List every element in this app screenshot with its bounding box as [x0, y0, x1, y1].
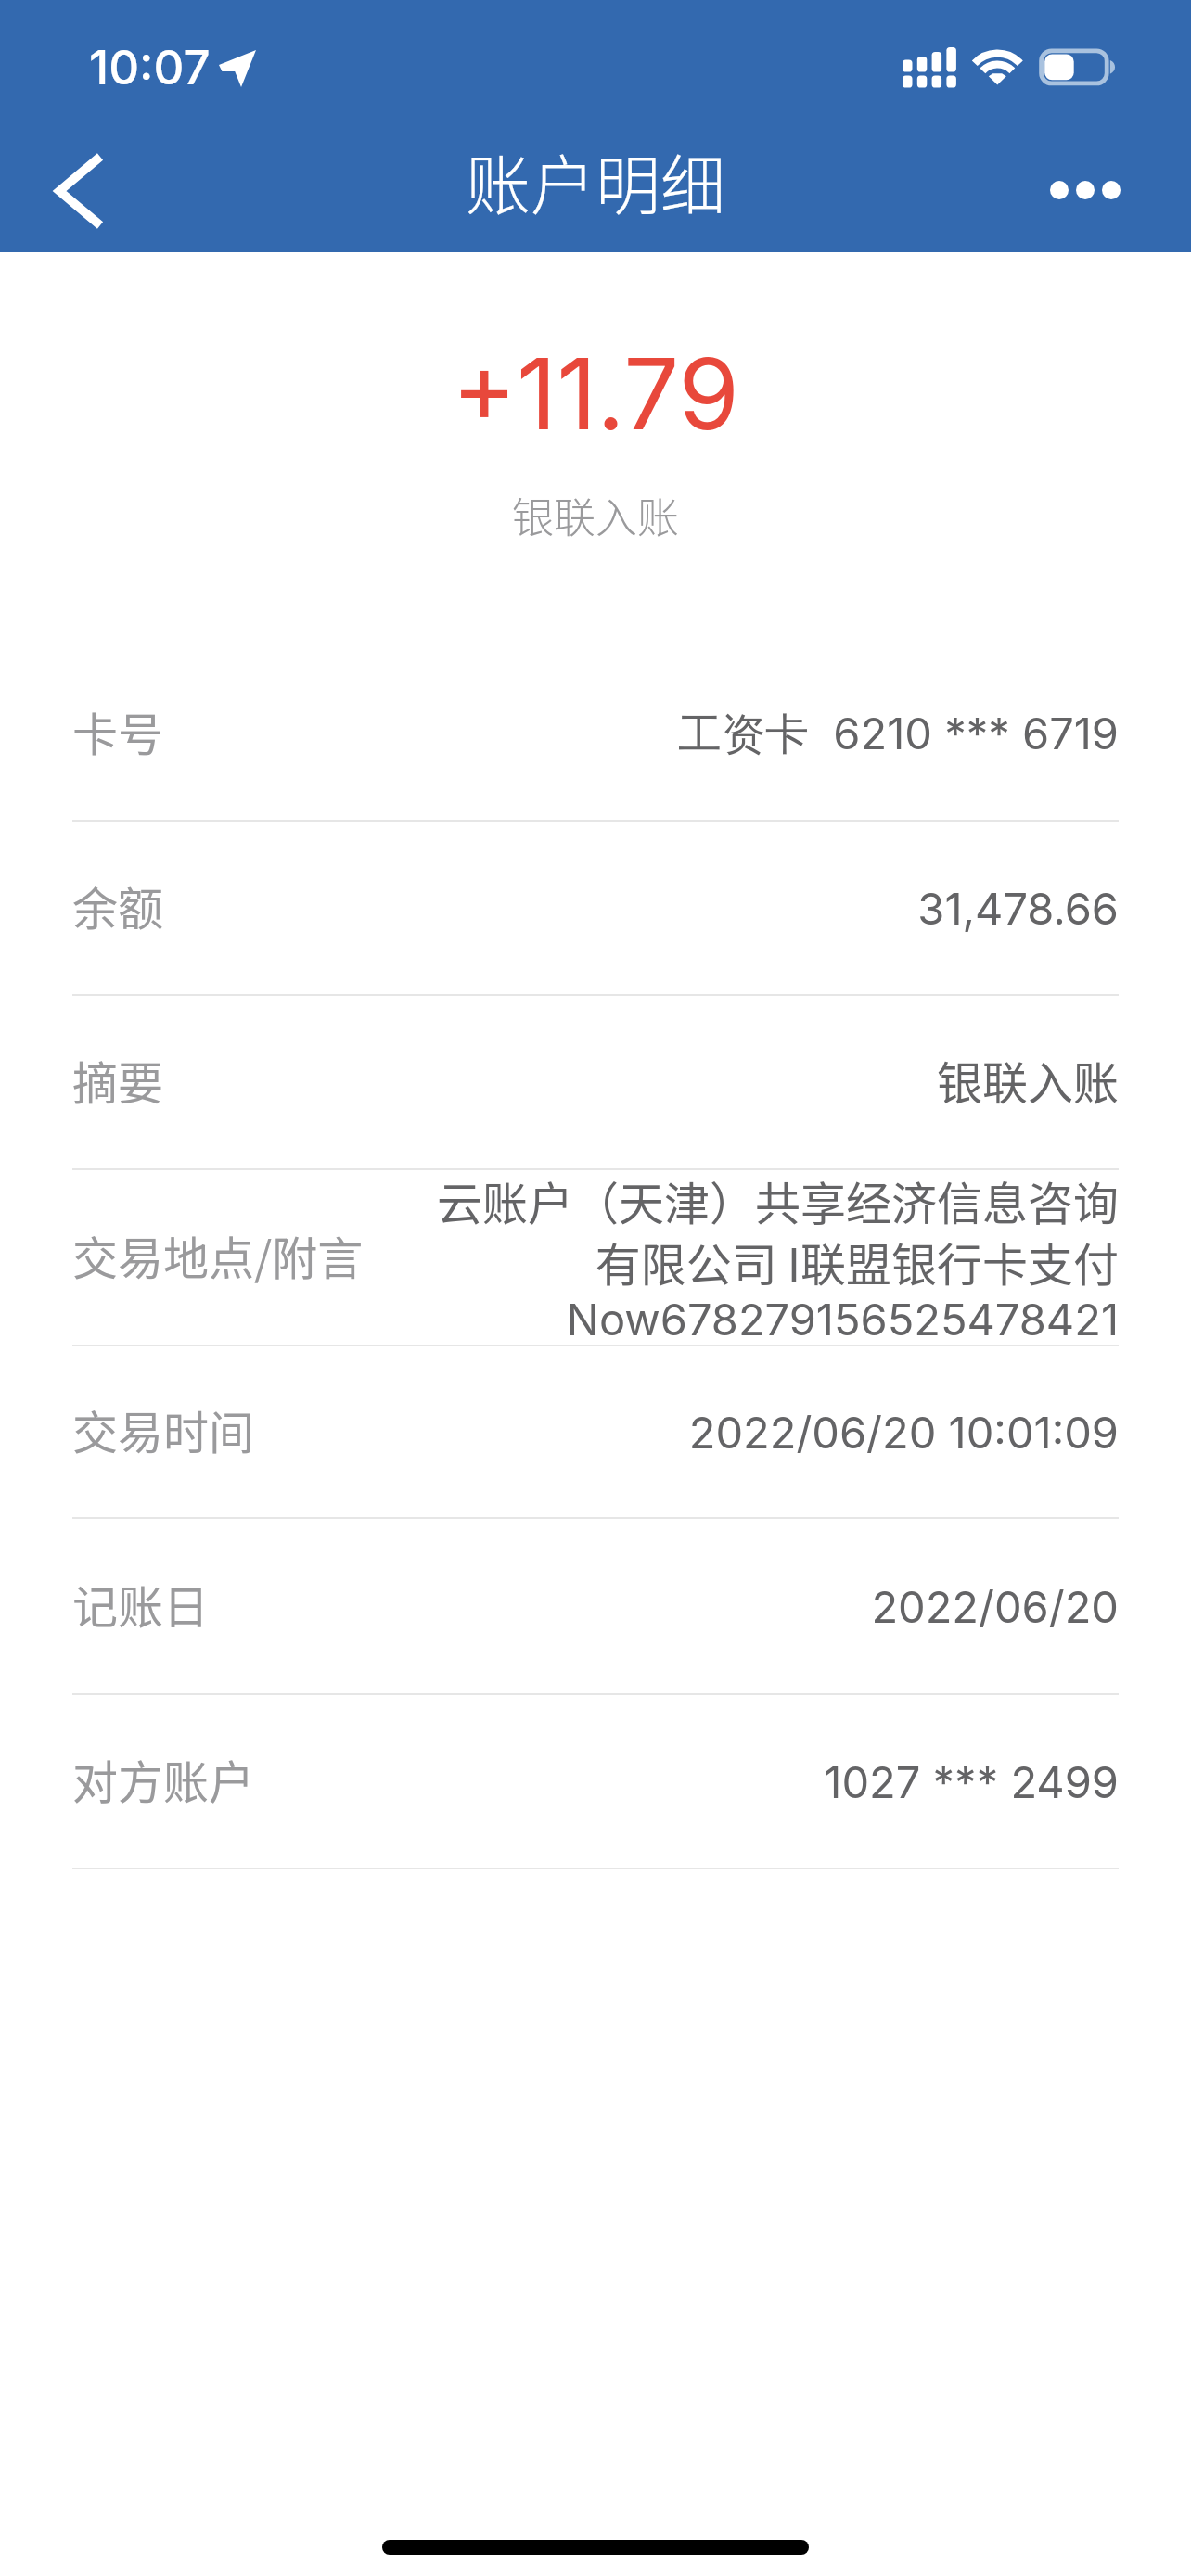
staticText: Now678279156525478421 [566, 1293, 1119, 1345]
button[interactable]: More options [1039, 130, 1191, 252]
staticText: 对方账户 [72, 1746, 255, 1812]
staticText: 2022/06/20 [871, 1580, 1119, 1633]
button[interactable]: 对方账户 [0, 1695, 1191, 1868]
button[interactable]: 卡号 [0, 647, 1191, 820]
staticText: 有限公司 I联盟银行卡支付 [595, 1229, 1119, 1294]
staticText: 银联入账 [0, 485, 1191, 545]
staticText: 摘要 [72, 1047, 164, 1113]
staticText: 工资卡 6210 *** 6719 [677, 707, 1119, 761]
staticText: 卡号 [72, 698, 164, 764]
button[interactable]: 余额 [0, 822, 1191, 994]
staticText: 交易地点/附言 [72, 1222, 364, 1288]
button[interactable]: 交易地点/附言 [0, 1170, 1191, 1345]
staticText: 记账日 [72, 1571, 210, 1637]
staticText: 账户明细 [466, 134, 725, 228]
staticText: +11.79 [0, 334, 1191, 453]
button[interactable]: 交易时间 [0, 1346, 1191, 1517]
staticText: 交易时间 [72, 1396, 255, 1462]
staticText: 银联入账 [936, 1047, 1119, 1113]
staticText: 云账户（天津）共享经济信息咨询 [436, 1167, 1119, 1233]
staticText: 1027 *** 2499 [824, 1755, 1119, 1808]
button[interactable]: 摘要 [0, 996, 1191, 1168]
button[interactable]: Back [0, 130, 152, 252]
staticText: 10:07 [89, 39, 211, 96]
staticText: 余额 [72, 873, 164, 938]
button[interactable]: 记账日 [0, 1519, 1191, 1693]
staticText: 31,478.66 [917, 882, 1119, 935]
staticText: 2022/06/20 10:01:09 [688, 1406, 1119, 1459]
